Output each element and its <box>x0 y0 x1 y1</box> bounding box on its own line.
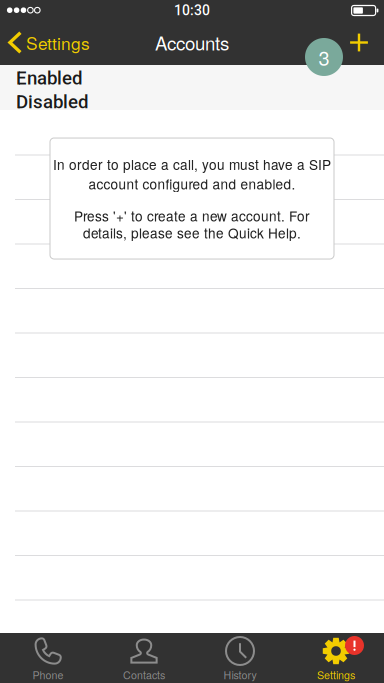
staticText: Phone <box>32 667 63 682</box>
button[interactable]: Phone <box>0 633 96 683</box>
staticText: 3 <box>318 43 329 71</box>
button[interactable]: Add account <box>337 20 381 65</box>
button[interactable]: Settings <box>0 20 130 65</box>
staticText: Enabled <box>16 67 83 89</box>
button[interactable]: Contacts <box>96 633 192 683</box>
staticText: account configured and enabled. <box>88 174 295 193</box>
staticText: Disabled <box>16 91 89 113</box>
staticText: Press '+' to create a new account. For <box>74 206 310 225</box>
button[interactable]: History <box>192 633 288 683</box>
staticText: Accounts <box>155 29 229 56</box>
staticText: details, please see the Quick Help. <box>83 223 301 242</box>
staticText: Settings <box>317 667 355 682</box>
staticText: 10:30 <box>174 2 210 19</box>
staticText: Settings <box>26 30 90 55</box>
button[interactable]: Settings <box>288 633 384 683</box>
staticText: History <box>223 667 256 682</box>
staticText: In order to place a call, you must have … <box>53 154 331 174</box>
staticText: Contacts <box>123 667 165 682</box>
